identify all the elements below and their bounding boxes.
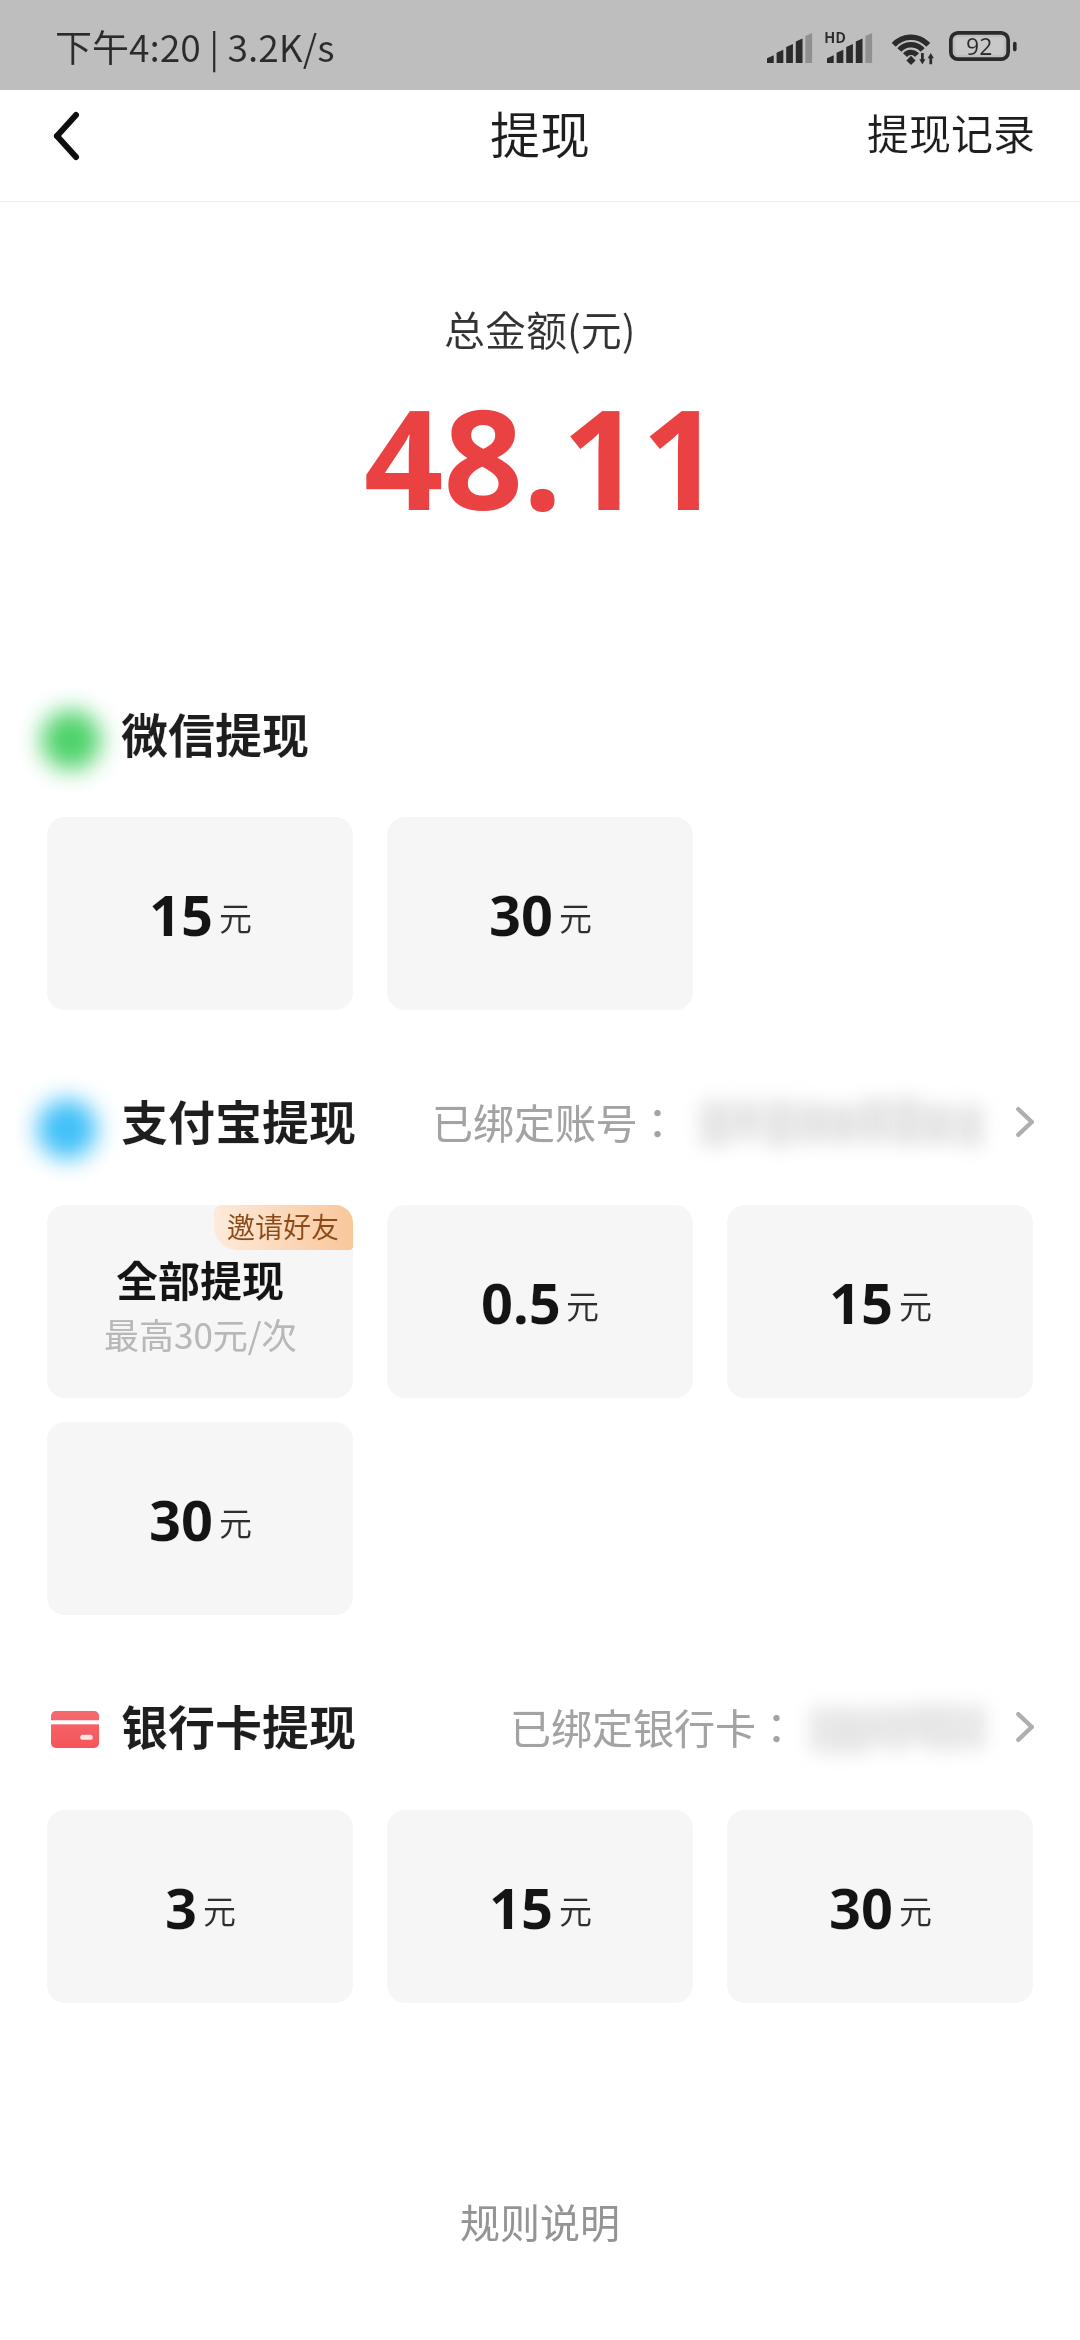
staticText: 元 — [559, 893, 592, 941]
staticText: 15 — [489, 1869, 554, 1945]
staticText: 提现记录 — [867, 101, 1036, 162]
staticText: 15 — [149, 876, 214, 952]
staticText: 支付宝提现 — [121, 1085, 356, 1153]
button[interactable]: 已绑定银行卡： — [400, 1685, 1080, 1775]
staticText: 15 — [829, 1264, 894, 1340]
button[interactable]: 30 — [727, 1810, 1033, 2003]
staticText: 全部提现 — [116, 1248, 285, 1309]
staticText: 最高30元/次 — [104, 1308, 297, 1359]
button[interactable]: 15 — [387, 1810, 693, 2003]
staticText: 已绑定银行卡： — [510, 1696, 797, 1755]
staticText: 微信提现 — [121, 698, 309, 766]
staticText: 已绑定账号： — [432, 1091, 678, 1150]
staticText: 元 — [559, 1886, 592, 1934]
button[interactable]: 邀请好友 — [47, 1205, 353, 1398]
staticText: 下午4:20 | 3.2K/s — [55, 19, 335, 73]
staticText: 元 — [203, 1886, 236, 1934]
staticText: 30 — [829, 1869, 894, 1945]
button[interactable]: 15 — [47, 817, 353, 1010]
staticText: 0.5 — [481, 1264, 561, 1340]
staticText: 30 — [489, 876, 554, 952]
button[interactable]: 3 — [47, 1810, 353, 2003]
staticText: 元 — [219, 893, 252, 941]
button[interactable]: 规则说明 — [420, 2178, 660, 2264]
staticText: 银行卡提现 — [121, 1690, 356, 1758]
staticText: 48.11 — [364, 361, 722, 550]
button[interactable]: 提现记录 — [837, 95, 1080, 186]
staticText: 提现 — [490, 96, 590, 168]
staticText: 3 — [165, 1869, 198, 1945]
staticText: 规则说明 — [460, 2192, 620, 2250]
staticText: HD — [824, 26, 847, 48]
button[interactable]: 15 — [727, 1205, 1033, 1398]
button[interactable]: Back — [6, 90, 126, 201]
button[interactable]: 0.5 — [387, 1205, 693, 1398]
staticText: 元 — [899, 1281, 932, 1329]
button[interactable]: 30 — [387, 817, 693, 1010]
staticText: 邀请好友 — [227, 1206, 340, 1247]
staticText: 元 — [566, 1281, 599, 1329]
staticText: 92 — [966, 30, 993, 60]
staticText: 总金额(元) — [444, 298, 636, 357]
staticText: 元 — [219, 1498, 252, 1546]
staticText: 30 — [149, 1481, 214, 1557]
button[interactable]: 30 — [47, 1422, 353, 1615]
button[interactable]: 已绑定账号： — [400, 1080, 1080, 1170]
staticText: 元 — [899, 1886, 932, 1934]
